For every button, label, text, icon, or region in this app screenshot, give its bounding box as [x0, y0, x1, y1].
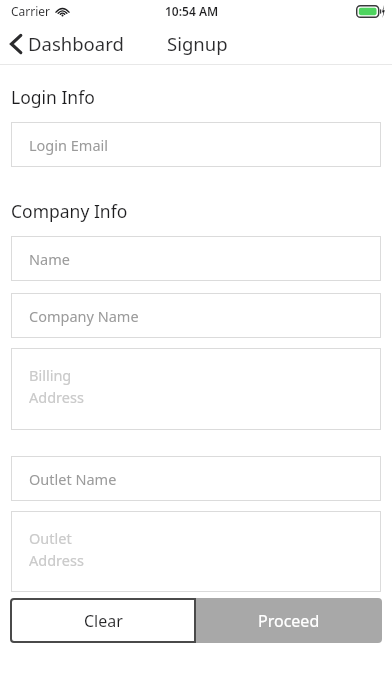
staticText: Carrier [11, 3, 51, 19]
staticText: 10:54 AM [165, 3, 219, 19]
button[interactable]: Company Name [11, 293, 381, 338]
button[interactable]: Clear [10, 598, 196, 643]
staticText: Clear [84, 610, 123, 632]
button[interactable]: Outlet Address [11, 511, 381, 592]
staticText: Dashboard [28, 31, 124, 56]
button[interactable]: Name [11, 236, 381, 281]
button[interactable]: Dashboard [0, 26, 134, 61]
staticText: Company Info [11, 199, 128, 223]
other: Battery charging [356, 5, 386, 18]
staticText: Company Name [29, 306, 139, 326]
button[interactable]: Billing Address [11, 348, 381, 430]
button[interactable]: Outlet Name [11, 456, 381, 501]
staticText: Login Email [29, 135, 108, 155]
staticText: Outlet Address [29, 528, 84, 570]
button[interactable]: Login Email [11, 122, 381, 167]
staticText: Proceed [258, 610, 320, 632]
staticText: Login Info [11, 85, 95, 109]
staticText: Name [29, 249, 70, 269]
staticText: Billing Address [29, 365, 84, 407]
button[interactable]: Proceed [196, 598, 382, 643]
staticText: Signup [167, 31, 228, 56]
staticText: Outlet Name [29, 469, 117, 489]
